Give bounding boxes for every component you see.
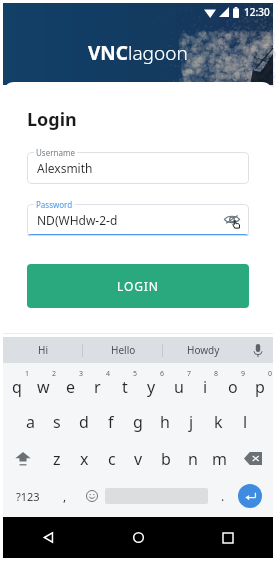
staticText: g	[133, 411, 143, 433]
button[interactable]: r	[84, 365, 111, 403]
button[interactable]: u	[165, 365, 192, 403]
button[interactable]: q	[3, 365, 30, 403]
button[interactable]: d	[70, 403, 97, 440]
staticText: Hello	[111, 343, 136, 357]
button[interactable]: k	[205, 403, 232, 440]
staticText: x	[80, 448, 89, 470]
button[interactable]: Voice input	[243, 337, 273, 363]
button[interactable]: g	[124, 403, 151, 440]
button[interactable]: a	[17, 403, 43, 440]
staticText: z	[53, 448, 61, 470]
button[interactable]: e	[57, 365, 84, 403]
staticText: l	[243, 411, 248, 433]
button[interactable]: o	[219, 365, 246, 403]
staticText: 4	[106, 369, 111, 379]
staticText: i	[203, 376, 208, 398]
staticText: VNC	[88, 40, 128, 66]
staticText: b	[161, 448, 171, 470]
staticText: 8	[214, 369, 219, 379]
staticText: t	[122, 376, 128, 398]
button[interactable]: Hello	[83, 337, 163, 363]
staticText: 6	[160, 369, 165, 379]
staticText: Alexsmith	[37, 160, 93, 176]
button[interactable]: Enter	[238, 484, 262, 508]
staticText: ,	[63, 488, 67, 504]
button[interactable]: l	[232, 403, 259, 440]
button[interactable]: i	[192, 365, 219, 403]
staticText: Username	[36, 147, 75, 158]
staticText: 12:30	[244, 5, 270, 19]
staticText: u	[174, 376, 184, 398]
button[interactable]: x	[71, 440, 98, 477]
button[interactable]: y	[138, 365, 165, 403]
button[interactable]: Howdy	[163, 337, 243, 363]
staticText: Hi	[38, 343, 48, 357]
staticText: f	[108, 411, 114, 433]
button[interactable]: t	[111, 365, 138, 403]
button[interactable]: Back	[3, 517, 93, 558]
button[interactable]: .	[208, 477, 238, 515]
staticText: h	[160, 411, 170, 433]
staticText: r	[94, 376, 101, 398]
staticText: a	[26, 411, 35, 433]
staticText: d	[79, 411, 89, 433]
button[interactable]: ?123	[3, 477, 52, 515]
staticText: o	[228, 376, 238, 398]
button[interactable]: Recents	[183, 517, 273, 558]
staticText: m	[212, 448, 227, 470]
staticText: Login	[27, 107, 77, 132]
button[interactable]: Alexsmith	[27, 152, 249, 184]
staticText: v	[134, 448, 143, 470]
button[interactable]: n	[179, 440, 206, 477]
staticText: Password	[36, 199, 73, 210]
button[interactable]: b	[152, 440, 179, 477]
staticText: 7	[187, 369, 192, 379]
button[interactable]: Emoji	[78, 477, 105, 515]
staticText: n	[188, 448, 198, 470]
button[interactable]: w	[30, 365, 57, 403]
staticText: q	[12, 376, 22, 398]
button[interactable]: Shift	[3, 440, 43, 477]
button[interactable]: h	[151, 403, 178, 440]
staticText: 5	[133, 369, 138, 379]
staticText: e	[66, 376, 76, 398]
staticText: k	[214, 411, 223, 433]
staticText: 9	[241, 369, 246, 379]
staticText: ?123	[16, 489, 40, 504]
button[interactable]: Hi	[3, 337, 83, 363]
staticText: ND(WHdw-2-d	[37, 212, 118, 228]
staticText: y	[147, 376, 156, 398]
button[interactable]: Backspace	[233, 440, 273, 477]
staticText: s	[53, 411, 61, 433]
button[interactable]: s	[43, 403, 70, 440]
button[interactable]: v	[125, 440, 152, 477]
staticText: 0	[268, 369, 273, 379]
staticText: w	[37, 376, 50, 398]
staticText: p	[255, 376, 265, 398]
button[interactable]: ND(WHdw-2-d	[27, 204, 249, 236]
button[interactable]: ,	[52, 477, 78, 515]
button[interactable]: Home	[93, 517, 183, 558]
staticText: 3	[79, 369, 84, 379]
staticText: LOGIN	[117, 278, 159, 294]
staticText: .	[221, 488, 225, 504]
staticText: c	[108, 448, 116, 470]
button[interactable]: f	[97, 403, 124, 440]
staticText: lagoon	[128, 40, 188, 66]
button[interactable]: c	[98, 440, 125, 477]
button[interactable]: z	[43, 440, 71, 477]
button[interactable]: m	[206, 440, 233, 477]
staticText: j	[189, 411, 194, 433]
button[interactable]: j	[178, 403, 205, 440]
button[interactable]: p	[246, 365, 273, 403]
staticText: Howdy	[187, 343, 220, 357]
staticText: 2	[52, 369, 57, 379]
button[interactable]: Toggle password visibility	[223, 211, 241, 229]
button[interactable]: LOGIN	[27, 264, 249, 308]
staticText: 1	[25, 369, 30, 379]
